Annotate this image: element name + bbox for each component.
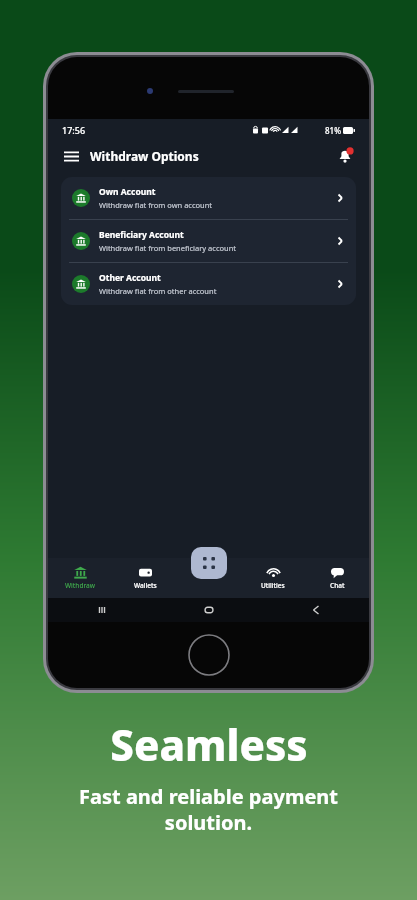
staticText: Withdraw fiat from own account [99, 200, 213, 210]
button[interactable]: Notifications [333, 144, 357, 168]
staticText: Chat [330, 581, 345, 590]
staticText: Withdraw Options [90, 148, 199, 164]
button[interactable]: Chat [305, 558, 369, 598]
button[interactable]: Other Account [61, 263, 356, 305]
button[interactable]: Own Account [61, 177, 356, 219]
staticText: Withdraw [65, 581, 96, 590]
staticText: Utilities [261, 581, 285, 590]
button[interactable]: Menu [60, 145, 82, 167]
button[interactable]: Withdraw [48, 558, 113, 598]
staticText: Wallets [134, 581, 157, 590]
button[interactable]: Wallets [113, 558, 177, 598]
staticText: Own Account [99, 186, 156, 198]
staticText: Beneficiary Account [99, 229, 184, 241]
staticText: 17:56 [62, 124, 86, 136]
staticText: Withdraw fiat from other account [99, 286, 217, 296]
staticText: Withdraw fiat from beneficiary account [99, 243, 237, 253]
button[interactable]: Apps [191, 547, 227, 579]
staticText: Fast and reliable payment solution. [79, 783, 338, 836]
staticText: Seamless [110, 716, 308, 773]
button[interactable]: Utilities [241, 558, 305, 598]
staticText: 81% [325, 125, 341, 136]
button[interactable]: Beneficiary Account [61, 220, 356, 262]
staticText: Other Account [99, 272, 161, 284]
